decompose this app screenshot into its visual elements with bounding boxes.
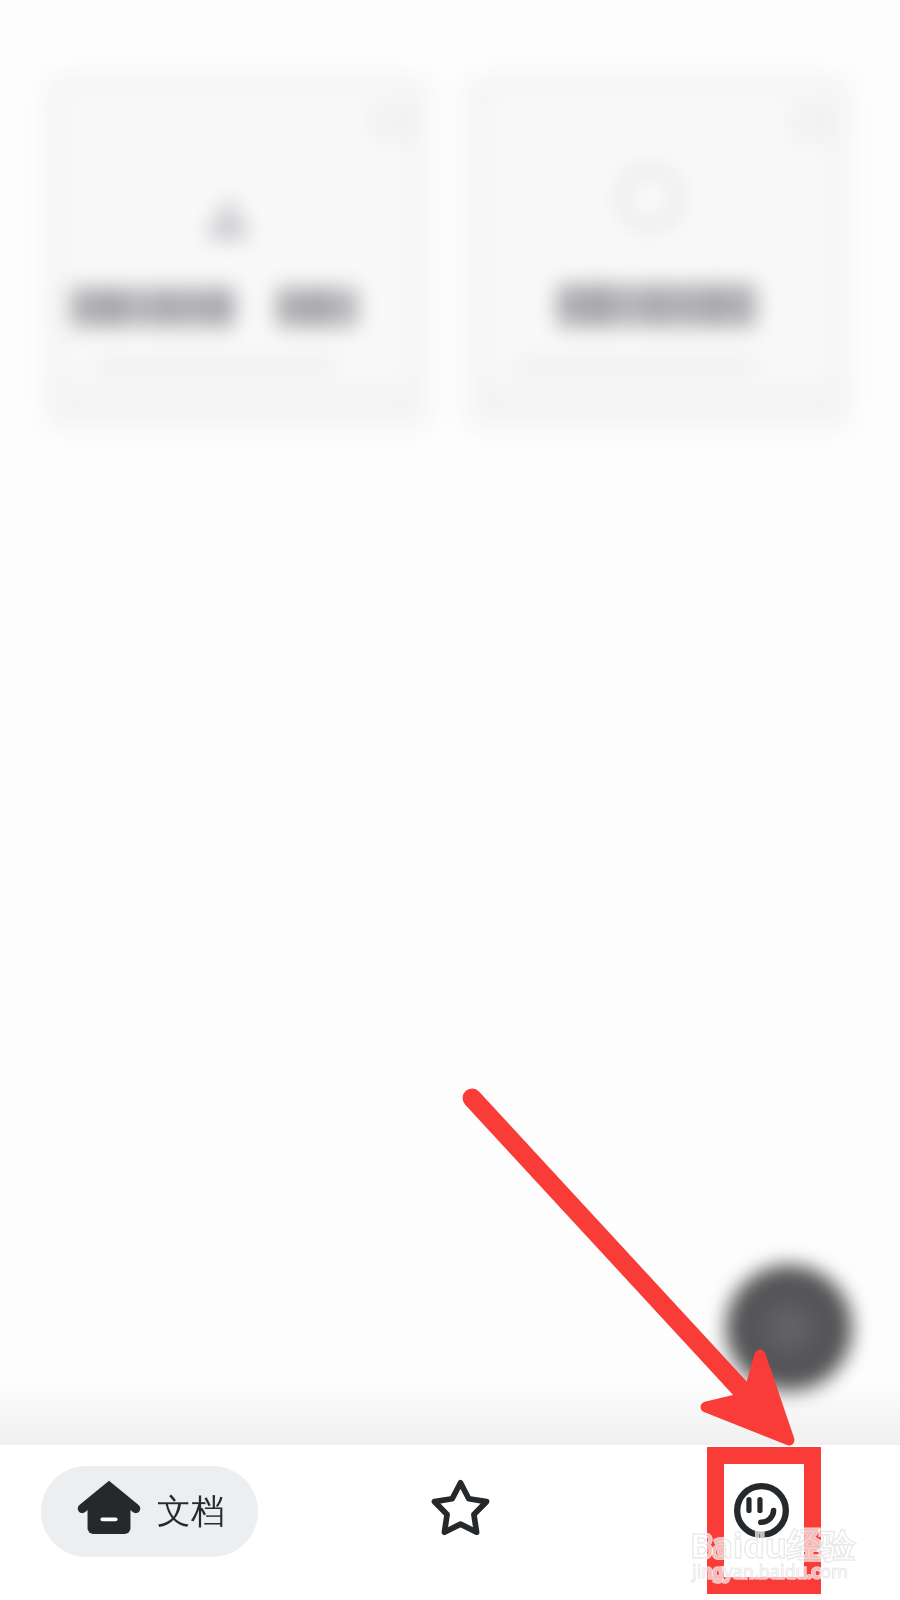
- staticText: 文档: [157, 1490, 225, 1533]
- button[interactable]: Profile: [707, 1456, 815, 1564]
- button[interactable]: 文档: [41, 1466, 258, 1557]
- staticText: Baidu经验: [690, 1522, 855, 1568]
- staticText: jingyan.baidu.com: [692, 1559, 848, 1584]
- staticText: Baidu经验: [690, 1522, 855, 1568]
- button[interactable]: Starred: [406, 1455, 514, 1563]
- button[interactable]: New document: [711, 1250, 867, 1406]
- staticText: jingyan.baidu.com: [692, 1559, 848, 1584]
